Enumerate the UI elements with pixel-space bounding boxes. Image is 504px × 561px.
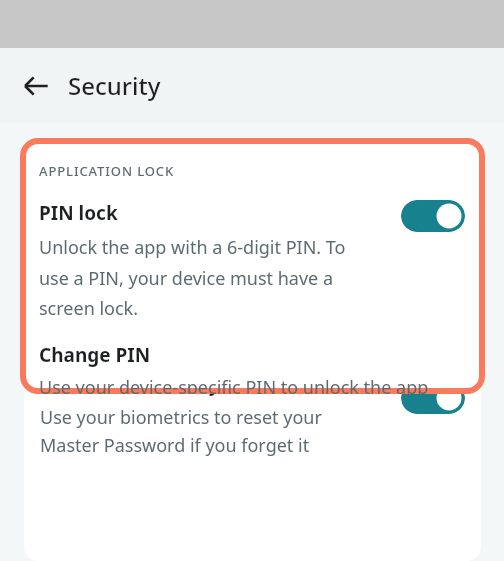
button[interactable]: Back — [12, 62, 60, 110]
staticText: APPLICATION LOCK — [39, 162, 175, 180]
staticText: Biometric unlock — [40, 284, 202, 310]
button[interactable]: Biometric recovery — [24, 371, 481, 457]
button[interactable]: PIN lock toggle — [401, 200, 465, 232]
staticText: Security — [68, 69, 161, 102]
button[interactable]: PIN lock — [20, 200, 485, 320]
staticText: Change PIN — [39, 342, 151, 368]
staticText: PIN lock — [39, 200, 118, 226]
button[interactable]: Change PIN — [20, 342, 485, 394]
staticText: Use your biometrics to reset your Master… — [40, 405, 322, 457]
button[interactable]: Biometric unlock — [24, 284, 481, 343]
button[interactable]: Biometric recovery toggle — [401, 382, 465, 414]
staticText: Unlock the app with a 6-digit PIN. To us… — [39, 235, 346, 320]
staticText: Use your device-specific PIN to unlock t… — [39, 375, 429, 394]
staticText: Biometric recovery — [40, 371, 220, 397]
